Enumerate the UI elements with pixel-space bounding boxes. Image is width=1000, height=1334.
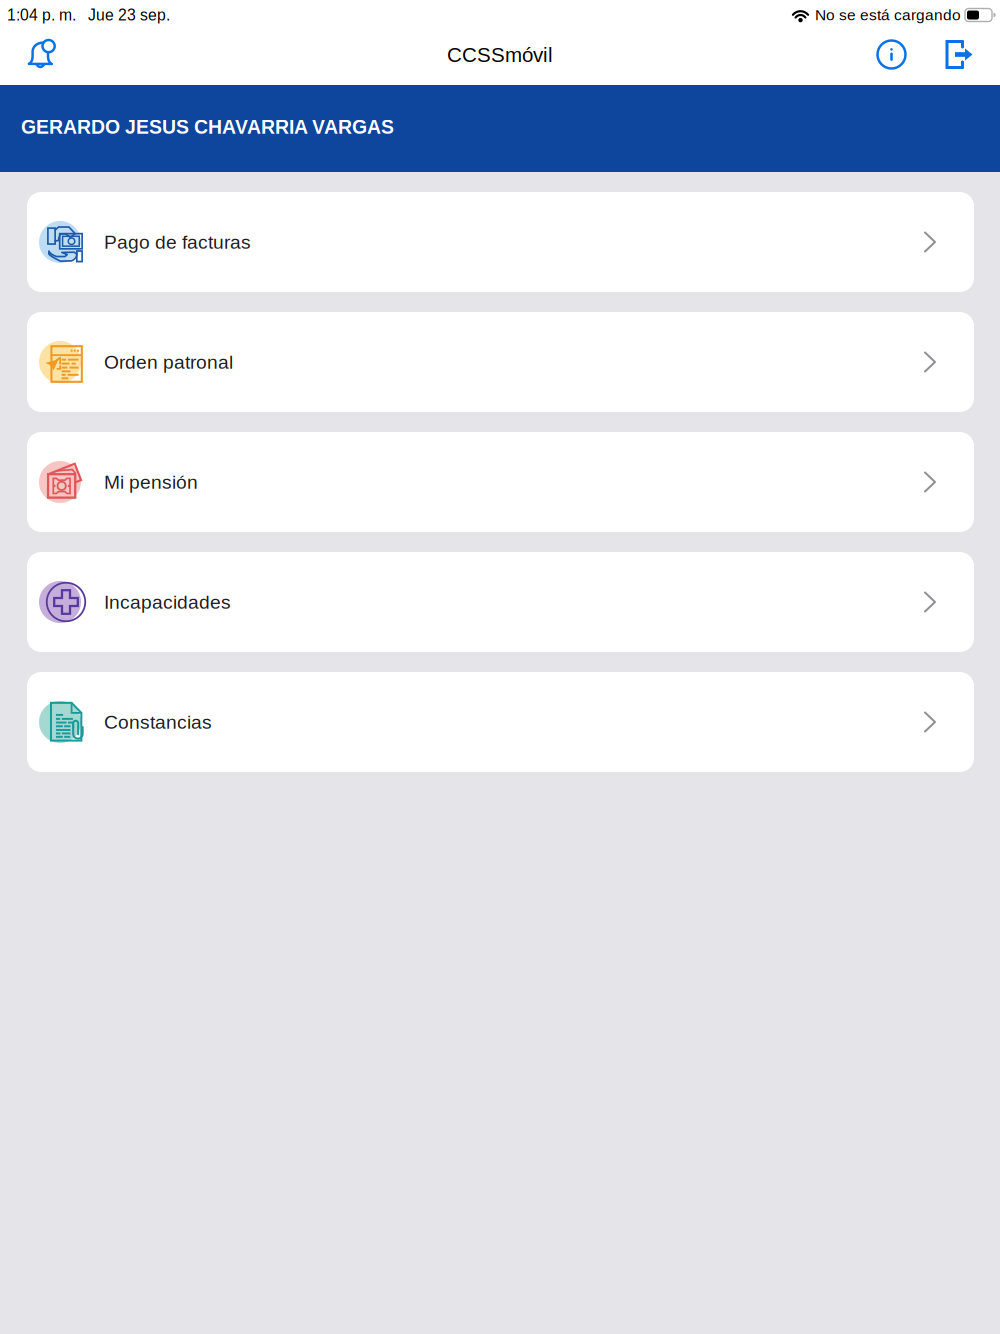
staticText: CCSSmóvil bbox=[447, 43, 553, 66]
button[interactable]: Orden patronal bbox=[27, 312, 974, 412]
button[interactable]: Pago de facturas bbox=[27, 192, 974, 292]
staticText: Orden patronal bbox=[104, 351, 233, 373]
button[interactable]: Mi pensión bbox=[27, 432, 974, 532]
staticText: Mi pensión bbox=[104, 471, 198, 493]
staticText: Pago de facturas bbox=[104, 231, 251, 253]
button[interactable]: Incapacidades bbox=[27, 552, 974, 652]
staticText: 1:04 p. m. Jue 23 sep. bbox=[7, 6, 170, 24]
staticText: No se está cargando bbox=[815, 6, 961, 24]
staticText: Incapacidades bbox=[104, 591, 231, 613]
button[interactable]: Salir bbox=[928, 27, 990, 87]
staticText: GERARDO JESUS CHAVARRIA VARGAS bbox=[21, 116, 394, 138]
button[interactable]: Notificaciones bbox=[15, 27, 69, 87]
button[interactable]: Constancias bbox=[27, 672, 974, 772]
staticText: Constancias bbox=[104, 711, 212, 733]
button[interactable]: Información bbox=[868, 27, 928, 87]
